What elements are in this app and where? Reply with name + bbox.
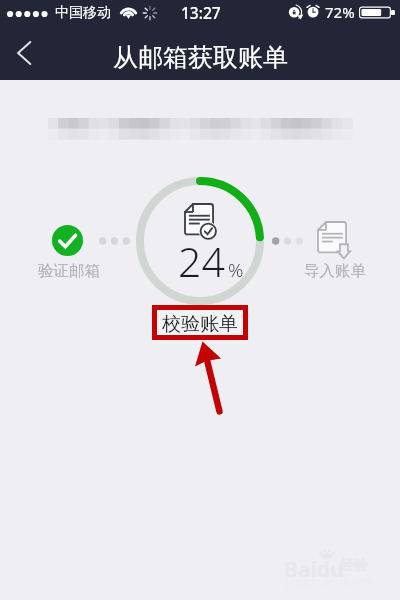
button[interactable]: 校验账单 (157, 310, 243, 335)
staticText: 导入账单 (304, 261, 366, 281)
button[interactable]: Back (2, 31, 46, 75)
button[interactable]: 验证邮箱 完成 (52, 225, 83, 256)
staticText: 24 (178, 233, 225, 289)
staticText: 13:27 (181, 2, 221, 23)
staticText: 72% (325, 2, 355, 22)
staticText: 中国移动 (55, 4, 111, 22)
staticText: 验证邮箱 (38, 261, 100, 281)
staticText: % (228, 257, 244, 283)
staticText: 校验账单 (162, 312, 238, 336)
staticText: 从邮箱获取账单 (113, 42, 288, 73)
